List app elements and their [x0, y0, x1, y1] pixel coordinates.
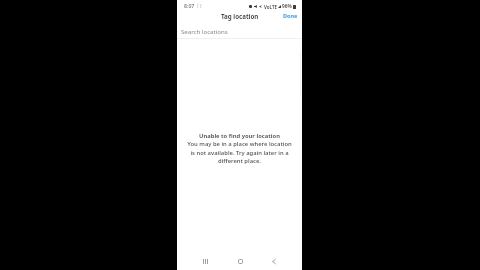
button[interactable]: Recent apps: [196, 252, 214, 270]
staticText: You may be in a place where location is …: [187, 140, 292, 164]
staticText: 8:07: [184, 2, 195, 9]
staticText: Tag location: [221, 12, 259, 20]
button[interactable]: Search locations: [177, 24, 302, 38]
staticText: Done: [283, 12, 298, 19]
staticText: VoLTE: [264, 4, 277, 10]
button[interactable]: Back: [265, 252, 283, 270]
staticText: 96%: [282, 3, 292, 10]
button[interactable]: Done: [279, 10, 302, 21]
button[interactable]: Home: [231, 252, 249, 270]
staticText: Unable to find your location: [199, 132, 280, 140]
staticText: Search locations: [181, 27, 228, 35]
